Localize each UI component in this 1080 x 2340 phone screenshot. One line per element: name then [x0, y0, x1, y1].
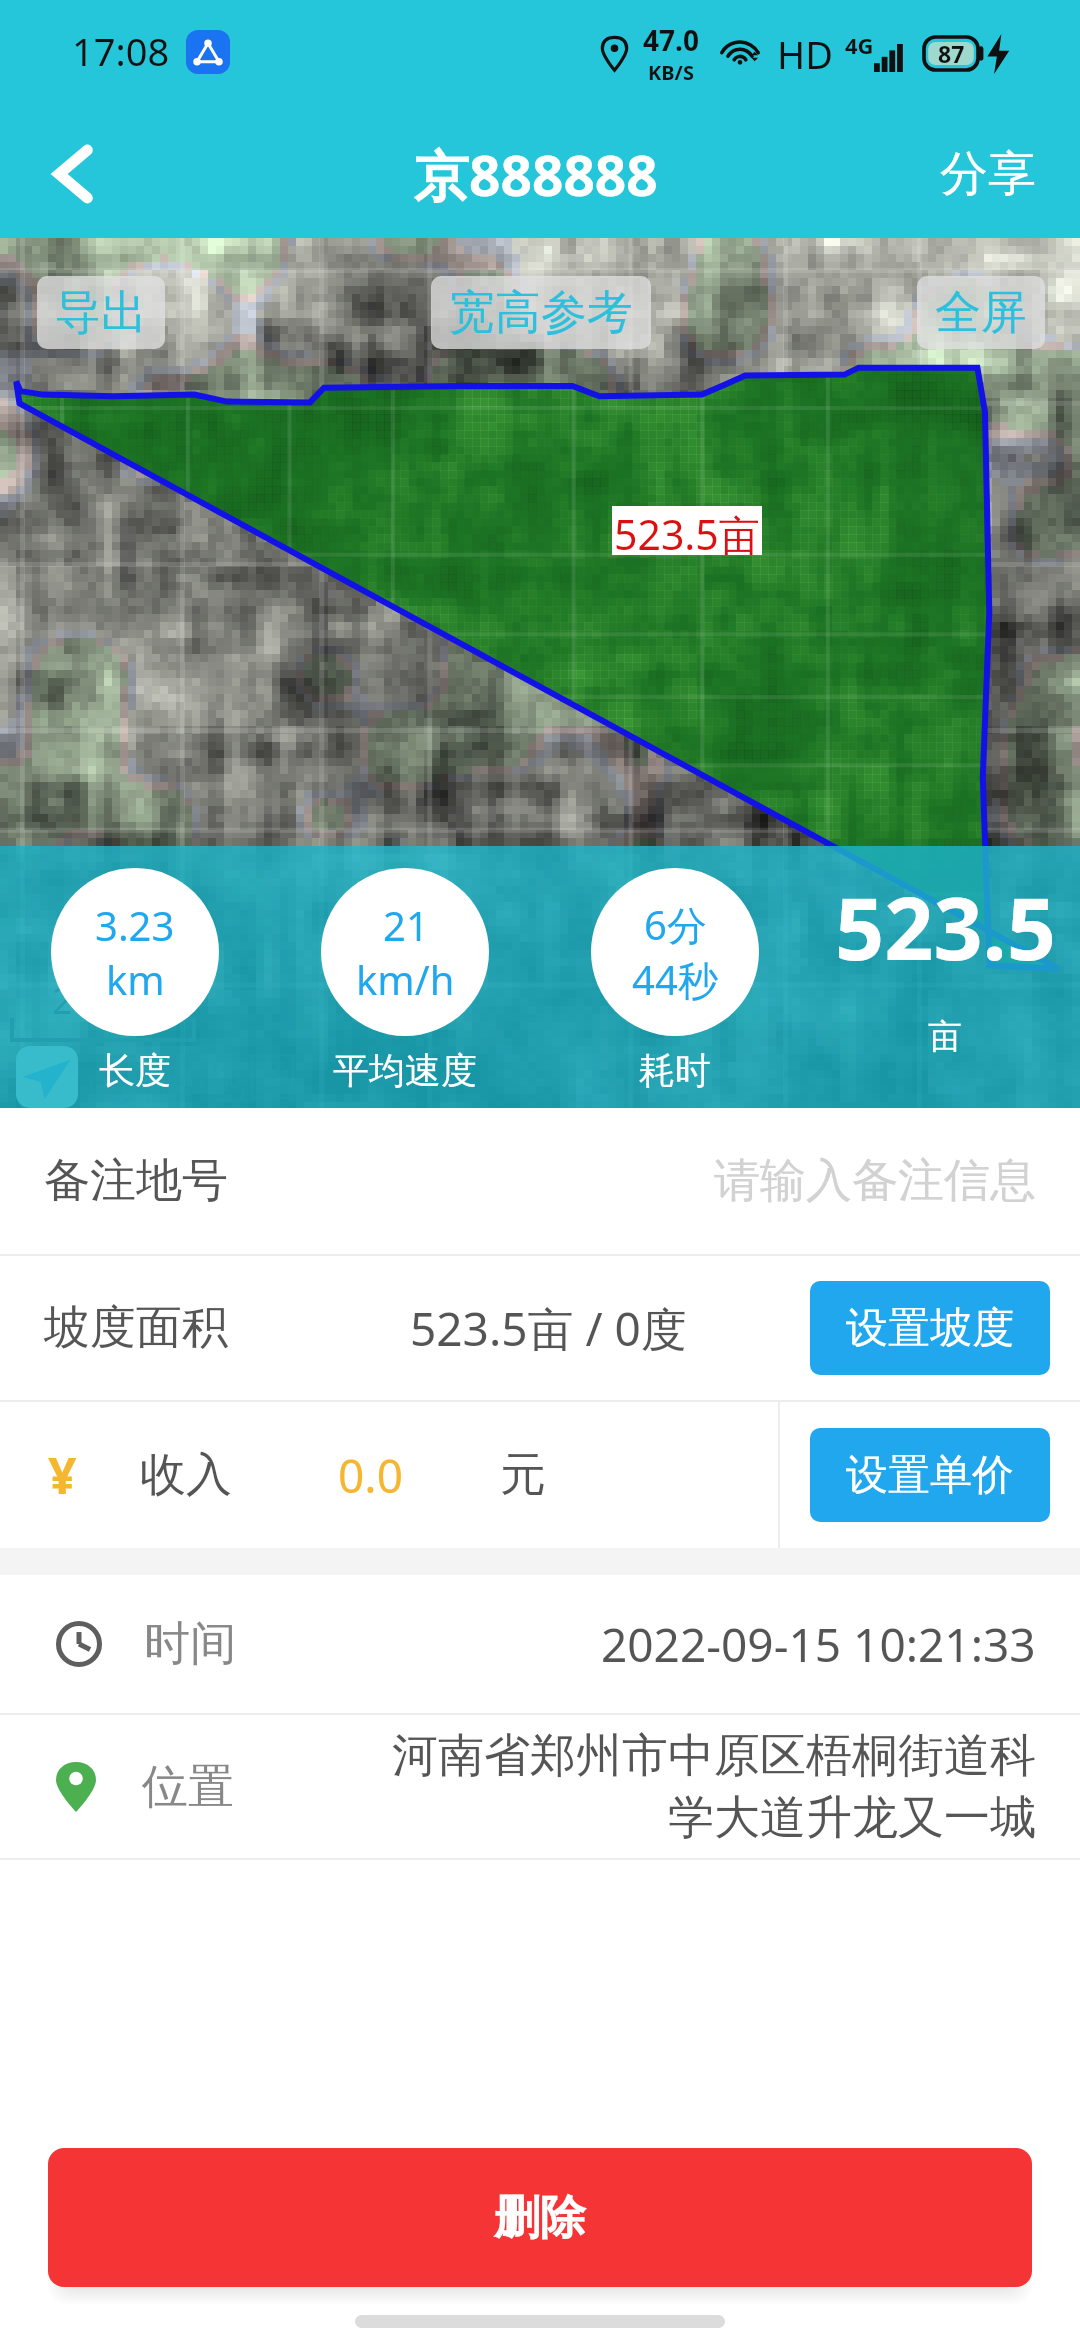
staticText: 河南省郑州市中原区梧桐街道科	[392, 1727, 1036, 1785]
staticText: KB/S	[648, 59, 694, 86]
staticText: 备注地号	[44, 1152, 228, 1210]
button[interactable]: 设置坡度	[810, 1281, 1050, 1375]
staticText: 21	[383, 898, 429, 952]
button[interactable]: 21	[270, 846, 540, 1108]
staticText: 亩	[928, 1015, 962, 1058]
staticText: 17:08	[72, 25, 170, 77]
button[interactable]: 坡度面积	[0, 1256, 1080, 1400]
button[interactable]: Back	[0, 110, 144, 238]
button[interactable]: ¥	[0, 1402, 1080, 1548]
staticText: 523.5	[835, 868, 1056, 985]
staticText: 收入	[140, 1446, 232, 1504]
staticText: 2022-09-15 10:21:33	[601, 1613, 1036, 1676]
staticText: 523.5亩 / 0度	[410, 1297, 687, 1360]
staticText: 6分	[644, 897, 707, 952]
staticText: 200米	[52, 976, 150, 1025]
button[interactable]: 3.23	[0, 846, 270, 1108]
button[interactable]: 6分	[540, 846, 810, 1108]
staticText: 元	[500, 1446, 546, 1504]
button[interactable]: 时间	[0, 1575, 1080, 1713]
staticText: 删除	[494, 2189, 586, 2247]
staticText: 全屏	[935, 284, 1027, 342]
staticText: 京888888	[414, 137, 658, 212]
staticText: 523.5亩	[614, 506, 760, 555]
staticText: 0.0	[338, 1444, 403, 1507]
staticText: 设置单价	[846, 1449, 1014, 1502]
staticText: 时间	[144, 1615, 236, 1673]
button[interactable]: 分享	[896, 122, 1080, 226]
staticText: 3.23	[95, 898, 175, 952]
button[interactable]: 设置单价	[810, 1428, 1050, 1522]
staticText: 坡度面积	[44, 1299, 228, 1357]
staticText: 导出	[55, 284, 147, 342]
staticText: 设置坡度	[846, 1302, 1014, 1355]
staticText: ¥	[48, 1441, 77, 1509]
staticText: km/h	[356, 952, 455, 1006]
staticText: 44秒	[632, 952, 718, 1007]
staticText: 耗时	[639, 1048, 711, 1093]
staticText: km	[106, 952, 165, 1006]
staticText: 平均速度	[333, 1048, 477, 1093]
staticText: 请输入备注信息	[714, 1152, 1036, 1210]
staticText: 学大道升龙又一城	[668, 1789, 1036, 1847]
button[interactable]: 导出	[37, 276, 165, 349]
staticText: 位置	[142, 1758, 234, 1816]
button[interactable]: 宽高参考	[431, 276, 651, 349]
staticText: 高德地图	[84, 1044, 300, 1112]
staticText: 47.0	[643, 21, 699, 59]
button[interactable]: 删除	[48, 2148, 1032, 2287]
staticText: 长度	[99, 1048, 171, 1093]
staticText: HD	[777, 28, 833, 80]
staticText: 87	[938, 38, 965, 69]
button[interactable]: 备注地号	[0, 1108, 1080, 1254]
button[interactable]: 全屏	[917, 276, 1045, 349]
staticText: 宽高参考	[449, 284, 633, 342]
staticText: 4G	[845, 30, 874, 60]
button[interactable]: 位置	[0, 1715, 1080, 1858]
staticText: 分享	[940, 144, 1036, 204]
